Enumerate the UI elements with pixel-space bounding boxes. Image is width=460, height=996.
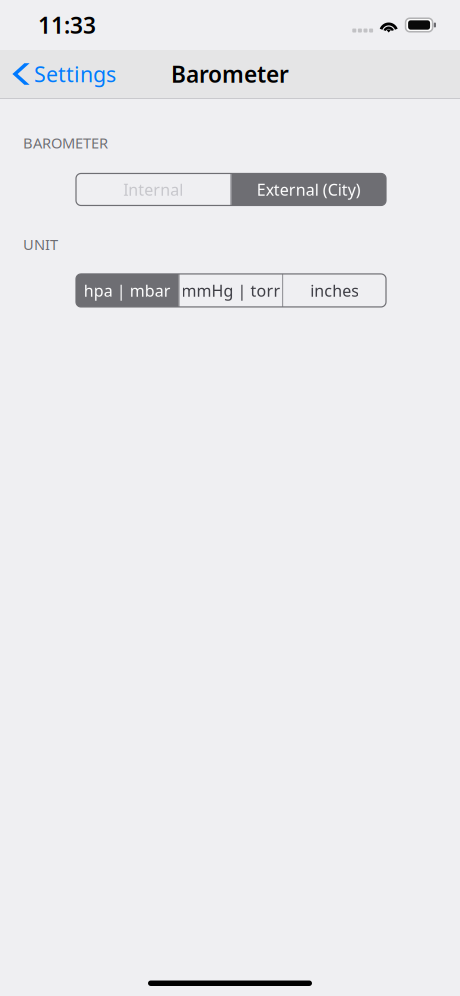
button[interactable]: hpa | mbar xyxy=(76,274,179,307)
staticText: External (City) xyxy=(257,179,361,200)
staticText: mmHg | torr xyxy=(181,280,280,301)
button[interactable]: mmHg | torr xyxy=(180,274,282,307)
button[interactable]: External (City) xyxy=(231,173,386,205)
staticText: 11:33 xyxy=(38,10,96,40)
staticText: UNIT xyxy=(23,234,58,254)
staticText: inches xyxy=(310,280,359,301)
staticText: Settings xyxy=(34,60,116,88)
staticText: Internal xyxy=(123,179,183,200)
staticText: Barometer xyxy=(171,59,289,89)
staticText: BAROMETER xyxy=(23,133,108,152)
staticText: hpa | mbar xyxy=(84,280,171,301)
button[interactable]: Back to Settings xyxy=(0,50,126,98)
button[interactable]: inches xyxy=(283,274,386,307)
button[interactable]: Internal xyxy=(76,173,230,205)
